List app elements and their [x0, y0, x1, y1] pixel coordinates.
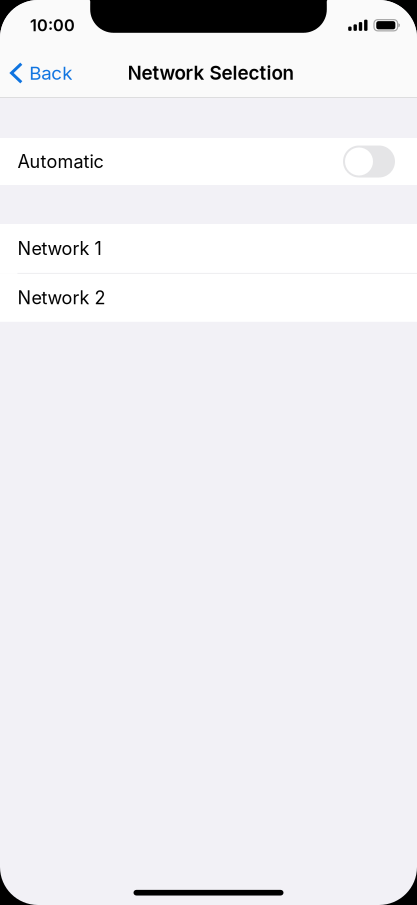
staticText: Network 1	[17, 238, 101, 259]
button[interactable]: Network 1	[0, 224, 417, 273]
staticText: Back	[29, 62, 72, 84]
button[interactable]: Back	[0, 48, 82, 98]
button[interactable]: Network 2	[0, 274, 417, 322]
staticText: Network Selection	[127, 62, 294, 84]
staticText: 10:00	[30, 15, 75, 35]
staticText: Automatic	[17, 151, 103, 172]
button[interactable]: Automatic	[0, 138, 417, 185]
staticText: Network 2	[17, 287, 105, 309]
